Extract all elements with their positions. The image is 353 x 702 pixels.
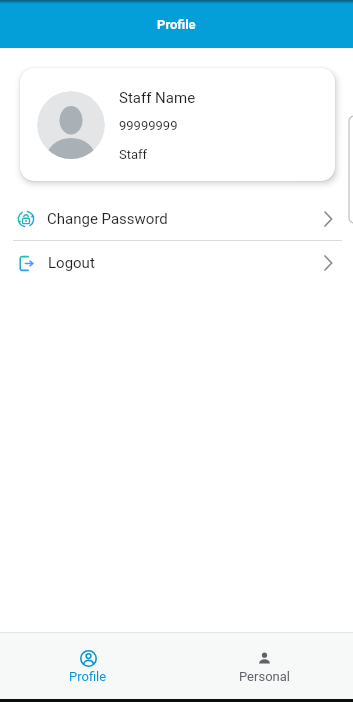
staticText: Personal <box>239 669 290 684</box>
staticText: Staff <box>119 147 148 162</box>
button[interactable]: Staff Name <box>20 68 335 181</box>
staticText: 99999999 <box>119 118 178 133</box>
staticText: Change Password <box>47 210 168 228</box>
staticText: Profile <box>157 17 196 32</box>
staticText: Staff Name <box>119 89 196 107</box>
button[interactable]: Logout <box>0 241 353 285</box>
staticText: Logout <box>48 254 95 272</box>
button[interactable]: Change Password <box>0 197 353 240</box>
button[interactable]: Personal <box>176 633 353 699</box>
button[interactable]: Profile <box>0 633 176 699</box>
staticText: Profile <box>69 669 107 684</box>
